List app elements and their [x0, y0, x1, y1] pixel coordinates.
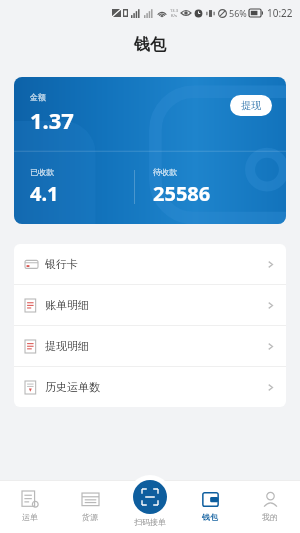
staticText: 提现	[241, 99, 261, 112]
button[interactable]: 账单明细	[14, 285, 286, 325]
button[interactable]: 提现明细	[14, 326, 286, 366]
button[interactable]: 历史运单数	[14, 367, 286, 407]
staticText: 账单明细	[45, 298, 89, 312]
staticText: 56%	[229, 7, 247, 19]
button[interactable]: 钱包	[180, 480, 240, 533]
staticText: 提现明细	[45, 339, 89, 353]
staticText: 银行卡	[45, 257, 78, 271]
staticText: 1.37	[30, 105, 74, 135]
staticText: 历史运单数	[45, 380, 100, 394]
staticText: 货源	[82, 512, 98, 522]
staticText: 已收款	[30, 167, 54, 177]
staticText: 我的	[262, 512, 278, 522]
button[interactable]: 货源	[60, 480, 120, 533]
staticText: 4.1	[30, 180, 59, 207]
staticText: 钱包	[202, 512, 218, 522]
button[interactable]: 我的	[240, 480, 300, 533]
staticText: 13.3	[170, 8, 178, 13]
button[interactable]: 扫码接单	[133, 480, 167, 514]
staticText: 待收款	[153, 167, 177, 177]
button[interactable]: 提现	[230, 95, 272, 116]
button[interactable]: 运单	[0, 480, 60, 533]
staticText: 扫码接单	[134, 517, 166, 527]
staticText: 10:22	[267, 6, 293, 20]
staticText: 金额	[30, 92, 46, 102]
staticText: K/s	[171, 13, 177, 18]
staticText: 25586	[153, 180, 211, 207]
staticText: 运单	[22, 512, 38, 522]
staticText: 钱包	[134, 35, 166, 55]
button[interactable]: 银行卡	[14, 244, 286, 284]
